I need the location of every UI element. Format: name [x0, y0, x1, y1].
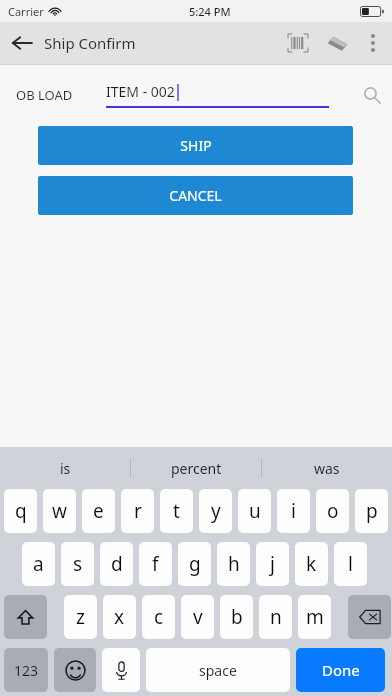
button[interactable]: f — [139, 542, 172, 586]
staticText: l — [348, 551, 353, 577]
staticText: c — [154, 604, 164, 630]
button[interactable]: k — [295, 542, 328, 586]
button[interactable]: h — [217, 542, 250, 586]
button[interactable]: y — [199, 489, 232, 533]
staticText: a — [33, 551, 44, 577]
staticText: w — [52, 498, 67, 524]
button[interactable]: Scan barcode — [278, 22, 318, 64]
staticText: z — [76, 604, 85, 630]
button[interactable]: percent — [131, 447, 261, 489]
staticText: e — [93, 498, 104, 524]
staticText: CANCEL — [169, 186, 222, 205]
staticText: n — [270, 604, 282, 630]
staticText: v — [193, 604, 203, 630]
staticText: q — [15, 498, 27, 524]
button[interactable]: x — [103, 595, 136, 639]
button[interactable]: p — [355, 489, 388, 533]
staticText: p — [366, 498, 378, 524]
button[interactable]: Shift — [4, 595, 47, 639]
staticText: o — [327, 498, 339, 524]
staticText: g — [189, 551, 201, 577]
staticText: SHIP — [180, 136, 212, 155]
button[interactable]: n — [259, 595, 292, 639]
staticText: y — [211, 498, 221, 524]
button[interactable]: SHIP — [38, 126, 353, 165]
button[interactable]: w — [43, 489, 76, 533]
staticText: f — [152, 551, 159, 577]
staticText: 5:24 PM — [189, 4, 231, 19]
button[interactable]: v — [181, 595, 214, 639]
staticText: r — [134, 498, 142, 524]
staticText: m — [306, 604, 324, 630]
button[interactable]: s — [61, 542, 94, 586]
button[interactable]: CANCEL — [38, 176, 353, 215]
button[interactable]: i — [277, 489, 310, 533]
staticText: j — [270, 551, 275, 577]
staticText: space — [199, 661, 237, 680]
staticText: k — [306, 551, 317, 577]
staticText: h — [228, 551, 240, 577]
button[interactable]: was — [262, 447, 392, 489]
staticText: is — [60, 459, 71, 478]
staticText: Done — [322, 660, 360, 680]
button[interactable]: e — [82, 489, 115, 533]
staticText: s — [73, 551, 83, 577]
button[interactable]: Search — [355, 78, 389, 112]
staticText: t — [173, 498, 180, 524]
button[interactable]: r — [121, 489, 154, 533]
staticText: 123 — [14, 661, 39, 680]
staticText: Carrier — [8, 4, 44, 19]
staticText: u — [249, 498, 261, 524]
button[interactable]: d — [100, 542, 133, 586]
staticText: i — [291, 498, 296, 524]
button[interactable]: Back — [0, 22, 44, 64]
staticText: ITEM - 002 — [106, 82, 175, 101]
staticText: OB LOAD — [16, 86, 73, 104]
button[interactable]: g — [178, 542, 211, 586]
staticText: d — [111, 551, 123, 577]
button[interactable]: Voice input — [102, 648, 140, 692]
button[interactable]: Backspace — [348, 595, 391, 639]
button[interactable]: Erase — [318, 22, 356, 64]
button[interactable]: m — [298, 595, 331, 639]
button[interactable]: o — [316, 489, 349, 533]
staticText: percent — [171, 459, 222, 478]
button[interactable]: Emoji — [54, 648, 96, 692]
button[interactable]: u — [238, 489, 271, 533]
button[interactable]: space — [146, 648, 290, 692]
button[interactable]: z — [64, 595, 97, 639]
button[interactable]: More options — [356, 22, 390, 64]
button[interactable]: q — [4, 489, 37, 533]
button[interactable]: Done — [296, 648, 385, 692]
button[interactable]: j — [256, 542, 289, 586]
staticText: Ship Confirm — [44, 33, 136, 53]
button[interactable]: is — [0, 447, 130, 489]
staticText: was — [314, 459, 340, 478]
staticText: b — [231, 604, 243, 630]
button[interactable]: a — [22, 542, 55, 586]
button[interactable]: b — [220, 595, 253, 639]
staticText: x — [114, 604, 125, 630]
button[interactable]: c — [142, 595, 175, 639]
button[interactable]: 123 — [4, 648, 48, 692]
button[interactable]: t — [160, 489, 193, 533]
button[interactable]: l — [334, 542, 367, 586]
